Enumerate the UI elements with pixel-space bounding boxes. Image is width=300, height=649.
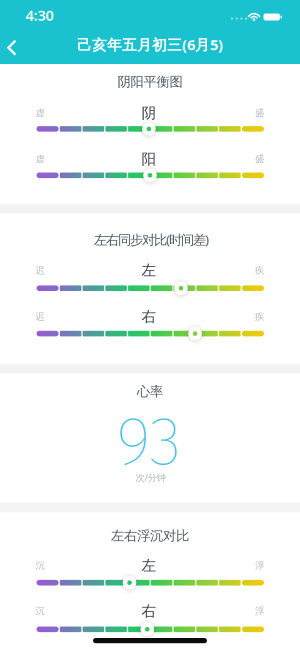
- staticText: 左右浮沉对比: [111, 528, 189, 544]
- staticText: 迟: [35, 311, 44, 322]
- staticText: 左右同步对比(时间差): [94, 230, 209, 248]
- staticText: 左: [141, 261, 156, 279]
- staticText: 沉: [35, 560, 44, 571]
- staticText: 虚: [35, 107, 44, 119]
- staticText: 心率: [137, 383, 163, 400]
- staticText: 迟: [35, 265, 44, 276]
- staticText: 93: [116, 401, 181, 483]
- button[interactable]: Back: [0, 28, 30, 64]
- staticText: 阴阳平衡图: [117, 73, 182, 90]
- staticText: 浮: [255, 560, 264, 571]
- staticText: 阳: [141, 150, 156, 168]
- staticText: 盛: [255, 153, 264, 165]
- staticText: 次/分钟: [135, 471, 165, 484]
- staticText: 右: [141, 308, 156, 326]
- staticText: 盛: [255, 107, 264, 119]
- staticText: 己亥年五月初三(6月5): [77, 35, 223, 54]
- staticText: 虚: [35, 153, 44, 165]
- staticText: 沉: [35, 605, 44, 617]
- staticText: 右: [141, 602, 156, 620]
- staticText: 疾: [255, 311, 264, 322]
- staticText: 浮: [255, 605, 264, 617]
- staticText: 疾: [255, 265, 264, 276]
- staticText: 阴: [141, 104, 156, 122]
- staticText: 4:30: [25, 5, 53, 25]
- staticText: 左: [141, 557, 156, 575]
